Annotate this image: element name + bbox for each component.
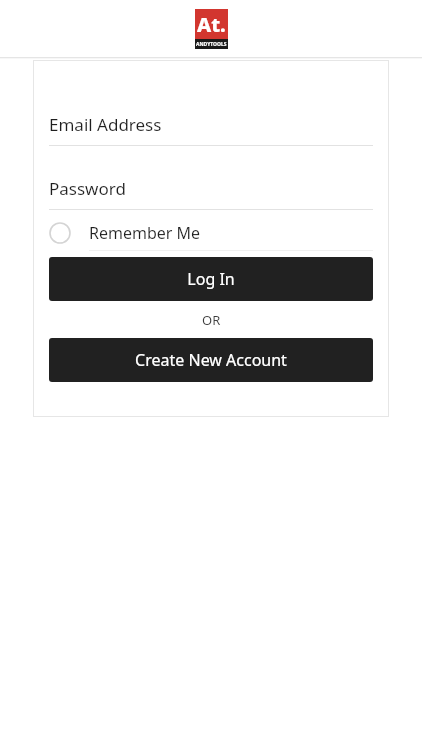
- staticText: OR: [202, 311, 221, 329]
- staticText: Email Address: [49, 113, 162, 136]
- staticText: Log In: [187, 268, 235, 290]
- staticText: At.: [197, 11, 226, 38]
- staticText: Remember Me: [89, 222, 201, 244]
- staticText: ANDYTOOLS: [196, 41, 227, 48]
- button[interactable]: AndyTools logo: [195, 9, 228, 49]
- button[interactable]: Remember Me: [49, 216, 373, 250]
- staticText: Create New Account: [135, 349, 287, 371]
- staticText: Password: [49, 177, 126, 200]
- button[interactable]: Log In: [49, 257, 373, 301]
- button[interactable]: Create New Account: [49, 338, 373, 382]
